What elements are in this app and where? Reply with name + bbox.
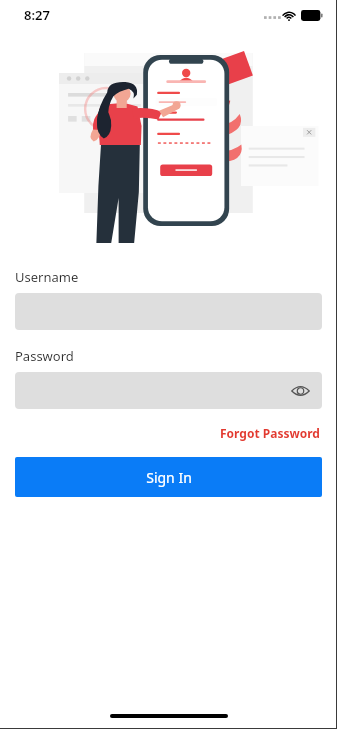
button[interactable]: Sign In — [15, 457, 322, 497]
staticText: Forgot Password — [220, 425, 320, 441]
staticText: 8:27 — [24, 6, 50, 24]
staticText: Username — [15, 268, 79, 286]
button[interactable]: Show password — [15, 372, 322, 409]
button[interactable]: Forgot Password — [218, 422, 322, 444]
button[interactable]: Show password — [288, 379, 312, 403]
staticText: Sign In — [146, 468, 192, 487]
staticText: Password — [15, 347, 74, 365]
